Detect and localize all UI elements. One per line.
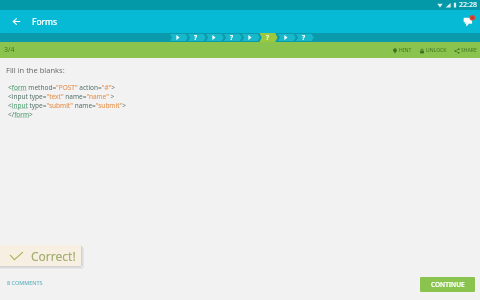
staticText: UNLOCK: [426, 47, 447, 54]
button[interactable]: Back: [5, 10, 28, 33]
staticText: SHARE: [461, 47, 477, 54]
staticText: Correct!: [31, 248, 76, 264]
button[interactable]: HINT: [392, 45, 412, 56]
staticText: Forms: [32, 16, 58, 28]
staticText: ?: [266, 33, 270, 42]
button[interactable]: UNLOCK: [419, 45, 447, 56]
button[interactable]: Lesson: [242, 33, 260, 42]
staticText: <input type="text" name="name" >: [8, 92, 115, 101]
button[interactable]: Lesson: [170, 33, 188, 42]
staticText: CONTINUE: [431, 280, 465, 289]
staticText: ?: [302, 33, 306, 42]
staticText: ?: [194, 33, 198, 42]
staticText: HINT: [399, 47, 412, 54]
staticText: Fill in the blanks:: [6, 65, 65, 75]
staticText: ?: [230, 33, 234, 42]
button[interactable]: Messages: [457, 10, 480, 33]
staticText: 22:28: [459, 0, 477, 10]
button[interactable]: Lesson: [278, 33, 296, 42]
button[interactable]: Lesson: [206, 33, 224, 42]
button[interactable]: SHARE: [454, 45, 477, 56]
button[interactable]: Quiz: [224, 33, 242, 42]
button[interactable]: CONTINUE: [420, 277, 475, 292]
staticText: 3/4: [4, 45, 15, 55]
staticText: </form>: [8, 110, 33, 119]
button[interactable]: Quiz: [260, 33, 278, 42]
button[interactable]: Quiz: [188, 33, 206, 42]
button[interactable]: 8 COMMENTS: [7, 279, 43, 286]
button[interactable]: Correct!: [0, 245, 81, 266]
staticText: <input type="submit" name="submit">: [8, 101, 126, 110]
button[interactable]: Quiz: [296, 33, 314, 42]
staticText: <form method="POST" action="#">: [8, 83, 115, 92]
